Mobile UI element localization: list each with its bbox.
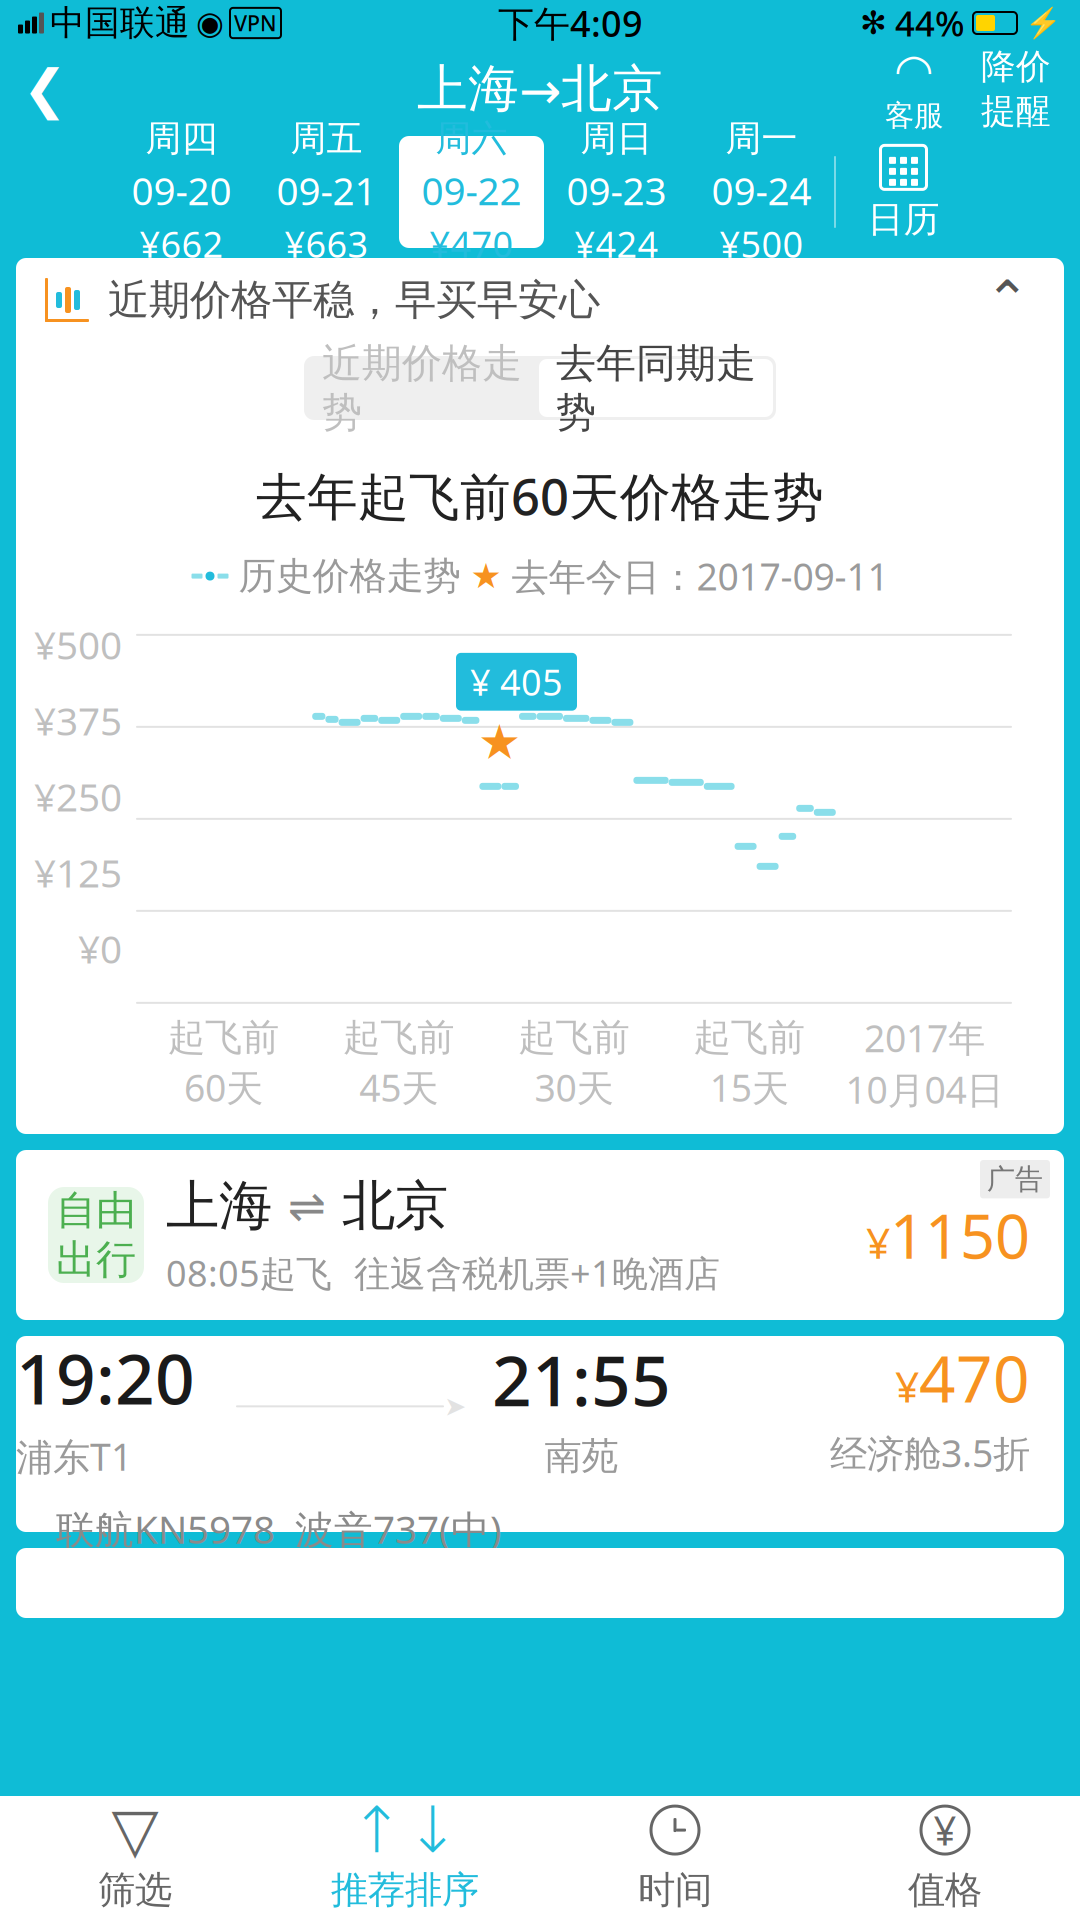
- staticText: ⇌: [288, 1180, 326, 1232]
- staticText: 周五: [290, 116, 362, 160]
- button[interactable]: 近期价格平稳，早买早安心: [16, 258, 1064, 342]
- staticText: ⌃: [985, 270, 1030, 330]
- staticText: ¥0: [78, 923, 122, 974]
- staticText: 下午4:09: [498, 0, 643, 47]
- staticText: 历史价格走势: [238, 553, 460, 599]
- staticText: 广告: [987, 1162, 1043, 1196]
- staticText: 周日: [580, 116, 652, 160]
- staticText: 近期价格走势: [322, 339, 522, 437]
- staticText: 起飞前: [518, 1015, 629, 1061]
- button[interactable]: ¥: [810, 1796, 1080, 1920]
- staticText: ★: [470, 556, 501, 596]
- staticText: 09-22: [421, 164, 521, 216]
- button[interactable]: 周六: [399, 136, 544, 248]
- button[interactable]: 近期价格走势: [305, 357, 539, 419]
- staticText: ¥500: [719, 220, 803, 268]
- staticText: 2017年: [864, 1013, 985, 1062]
- staticText: 出行: [56, 1235, 136, 1284]
- staticText: 44%: [895, 0, 965, 46]
- staticText: 自由: [56, 1186, 136, 1235]
- staticText: ¥424: [574, 220, 658, 268]
- staticText: ¥662: [139, 220, 223, 268]
- staticText: 近期价格平稳，早买早安心: [108, 275, 600, 325]
- staticText: 30天: [534, 1063, 613, 1112]
- button[interactable]: 周一: [689, 136, 834, 248]
- staticText: 筛选: [98, 1867, 172, 1913]
- staticText: 08:05起飞 往返含税机票+1晚酒店: [166, 1249, 720, 1297]
- staticText: 起飞前: [694, 1015, 805, 1061]
- staticText: ¥500: [34, 619, 122, 670]
- staticText: 09-24: [711, 164, 811, 216]
- staticText: 去年起飞前60天价格走势: [256, 462, 824, 529]
- staticText: 周四: [145, 116, 217, 160]
- button[interactable]: 去年同期走势: [539, 359, 773, 417]
- button[interactable]: 返回: [0, 49, 90, 129]
- staticText: 10月04日: [845, 1064, 1003, 1114]
- staticText: 降价: [981, 45, 1051, 88]
- staticText: 19:20: [16, 1331, 195, 1424]
- staticText: ¥: [866, 1214, 890, 1271]
- staticText: 去年今日：2017-09-11: [511, 551, 888, 601]
- staticText: 45天: [359, 1063, 438, 1112]
- staticText: 起飞前: [343, 1015, 454, 1061]
- staticText: ✻: [860, 5, 887, 41]
- staticText: 09-20: [131, 164, 231, 216]
- staticText: ★: [478, 715, 521, 769]
- button[interactable]: 19:20: [16, 1336, 1064, 1532]
- staticText: ▽: [111, 1795, 158, 1865]
- staticText: 经济舱3.5折: [830, 1428, 1030, 1478]
- button[interactable]: 日历: [836, 136, 971, 248]
- button[interactable]: 周四: [109, 136, 254, 248]
- staticText: ◠: [894, 44, 934, 96]
- staticText: ⚡: [1025, 6, 1062, 40]
- staticText: 时间: [638, 1867, 712, 1913]
- staticText: 1150: [890, 1194, 1030, 1276]
- staticText: 提醒: [981, 90, 1051, 133]
- staticText: 中国联通: [50, 2, 190, 44]
- staticText: ↓: [406, 1794, 460, 1866]
- button[interactable]: 周五: [254, 136, 399, 248]
- staticText: 上海: [166, 1173, 272, 1239]
- staticText: 客服: [885, 98, 943, 134]
- button[interactable]: 周日: [544, 136, 689, 248]
- staticText: ¥375: [34, 695, 122, 746]
- staticText: 起飞前: [168, 1015, 279, 1061]
- staticText: 21:55: [492, 1333, 671, 1425]
- staticText: ↑: [350, 1794, 404, 1866]
- staticText: ¥470: [429, 220, 513, 268]
- staticText: 09-21: [276, 164, 376, 216]
- staticText: ¥125: [34, 847, 122, 898]
- staticText: ◉: [196, 5, 224, 41]
- staticText: 联航KN5978 波音737(中): [56, 1503, 502, 1554]
- staticText: 上海→北京: [417, 58, 663, 120]
- staticText: 周一: [725, 116, 797, 160]
- staticText: ❮: [22, 59, 67, 119]
- staticText: 北京: [342, 1173, 448, 1239]
- staticText: ¥663: [284, 220, 368, 268]
- staticText: 推荐排序: [331, 1867, 479, 1913]
- staticText: ¥ 405: [470, 658, 563, 706]
- button[interactable]: 降价: [976, 45, 1056, 133]
- button[interactable]: ◠: [874, 44, 954, 134]
- button[interactable]: ↑: [270, 1796, 540, 1920]
- button[interactable]: 时间: [540, 1796, 810, 1920]
- staticText: 09-23: [566, 164, 666, 216]
- button[interactable]: 广告: [16, 1150, 1064, 1320]
- staticText: 15天: [710, 1063, 789, 1112]
- staticText: 南苑: [544, 1433, 618, 1479]
- staticText: 日历: [867, 197, 939, 242]
- button[interactable]: ▽: [0, 1796, 270, 1920]
- staticText: ➤: [444, 1391, 466, 1421]
- staticText: ¥250: [34, 771, 122, 822]
- staticText: 周六: [435, 116, 507, 160]
- staticText: ¥: [895, 1357, 919, 1414]
- staticText: 470: [919, 1335, 1030, 1420]
- staticText: VPN: [234, 9, 277, 37]
- staticText: 60天: [184, 1063, 263, 1112]
- staticText: 去年同期走势: [556, 339, 756, 437]
- staticText: 值格: [908, 1867, 982, 1913]
- staticText: 浦东T1: [16, 1432, 132, 1481]
- staticText: ¥: [933, 1803, 956, 1857]
